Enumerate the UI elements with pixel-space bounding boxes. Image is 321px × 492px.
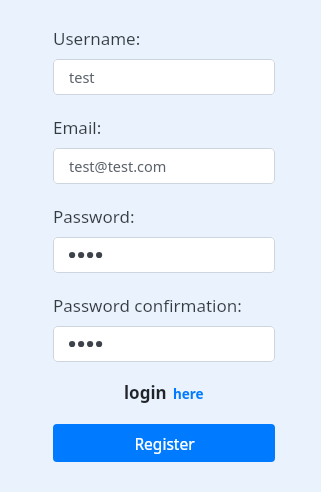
button[interactable]: test [53,59,275,95]
button[interactable]: Password input [53,237,275,273]
staticText: login [124,381,167,404]
staticText: Password: [53,205,135,228]
button[interactable]: test@test.com [53,148,275,184]
staticText: Password confirmation: [53,294,242,317]
button[interactable]: Register [53,424,275,462]
staticText: Email: [53,116,102,139]
staticText: test [69,67,95,87]
staticText: test@test.com [69,156,167,176]
button[interactable]: here [173,385,204,404]
staticText: Register [134,433,195,454]
staticText: here [173,385,204,403]
staticText: Username: [53,27,141,50]
button[interactable]: Password input [53,326,275,362]
